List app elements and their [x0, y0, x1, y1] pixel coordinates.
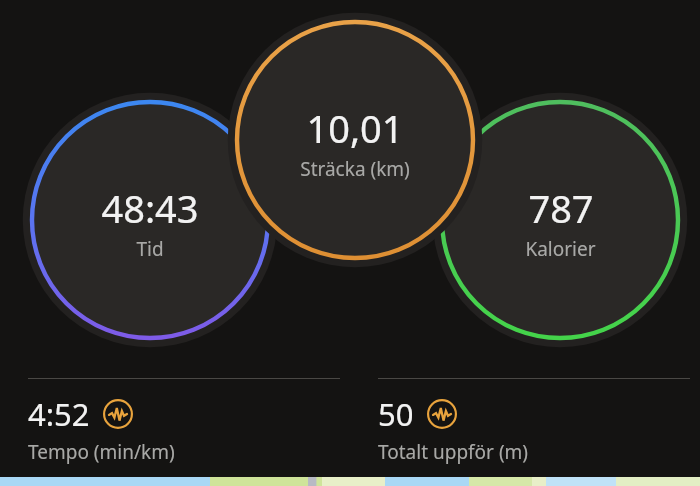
- button[interactable]: [442, 102, 678, 338]
- staticText: Tid: [136, 236, 164, 262]
- button[interactable]: 4:52: [0, 372, 350, 465]
- staticText: Sträcka (km): [300, 156, 410, 182]
- button[interactable]: [237, 22, 473, 258]
- staticText: Totalt uppför (m): [378, 439, 529, 465]
- staticText: Tempo (min/km): [28, 439, 175, 465]
- staticText: 48:43: [101, 182, 199, 234]
- button[interactable]: [32, 102, 268, 338]
- staticText: 4:52: [28, 393, 90, 435]
- other: Elevation details: [427, 399, 457, 429]
- staticText: 50: [378, 393, 414, 435]
- button[interactable]: 50: [350, 372, 700, 465]
- other: Pace details: [103, 399, 133, 429]
- staticText: 787: [528, 182, 594, 234]
- staticText: 10,01: [306, 102, 404, 154]
- staticText: Kalorier: [525, 236, 596, 262]
